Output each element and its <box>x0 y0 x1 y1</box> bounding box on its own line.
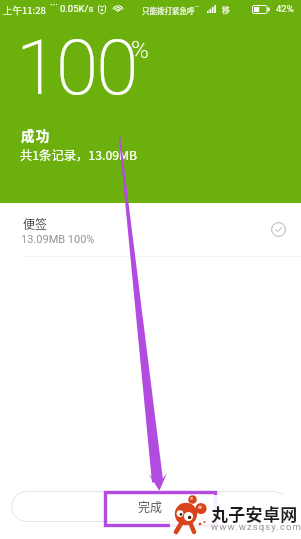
staticText: ·· <box>195 2 200 11</box>
staticText: 共1条记录，13.09MB <box>20 146 138 164</box>
staticText: 完成 <box>138 498 163 515</box>
staticText: 13.09MB 100% <box>21 233 95 246</box>
staticText: 100 <box>16 23 137 113</box>
staticText: % <box>131 36 149 64</box>
staticText: ··· <box>50 0 58 12</box>
staticText: 只能拨打紧急呼 <box>142 5 195 16</box>
staticText: 0.05K/s <box>60 3 94 14</box>
staticText: www.wzsqsy.com <box>211 521 301 532</box>
staticText: 移 <box>222 4 230 16</box>
staticText: 成功 <box>21 125 51 145</box>
staticText: 便签 <box>23 215 48 232</box>
staticText: 丸子安卓网 <box>211 501 298 526</box>
button[interactable]: 完成 <box>11 491 290 522</box>
staticText: 上午11:28 <box>3 3 46 17</box>
other: 已完成 <box>271 222 286 237</box>
button[interactable]: 便签 <box>0 203 301 257</box>
staticText: 42% <box>276 3 294 14</box>
